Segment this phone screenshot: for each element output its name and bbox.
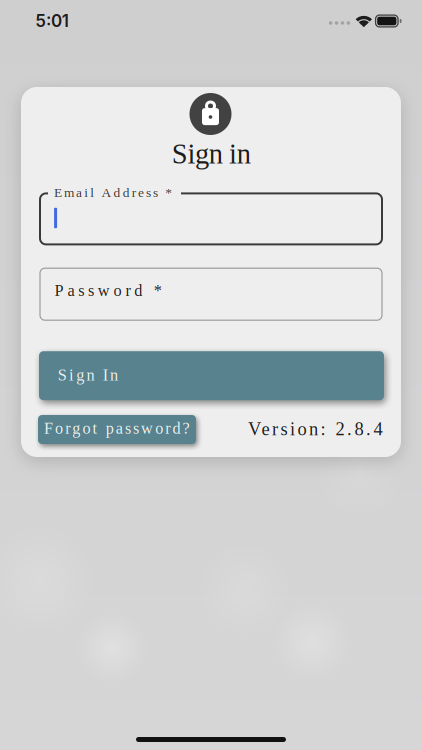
staticText: Forgot password? <box>44 419 196 437</box>
staticText: 5:01 <box>35 10 69 31</box>
button[interactable]: Password <box>40 268 382 320</box>
staticText: Sign in <box>172 138 257 170</box>
staticText: Version: 2.8.4 <box>248 419 390 439</box>
staticText: Email Address * <box>54 185 177 200</box>
staticText: Sign In <box>58 366 124 384</box>
button[interactable]: Sign In <box>39 351 384 400</box>
staticText: Password * <box>55 281 170 299</box>
button[interactable]: Email Address <box>40 193 382 244</box>
button[interactable]: Forgot password? <box>38 415 196 444</box>
